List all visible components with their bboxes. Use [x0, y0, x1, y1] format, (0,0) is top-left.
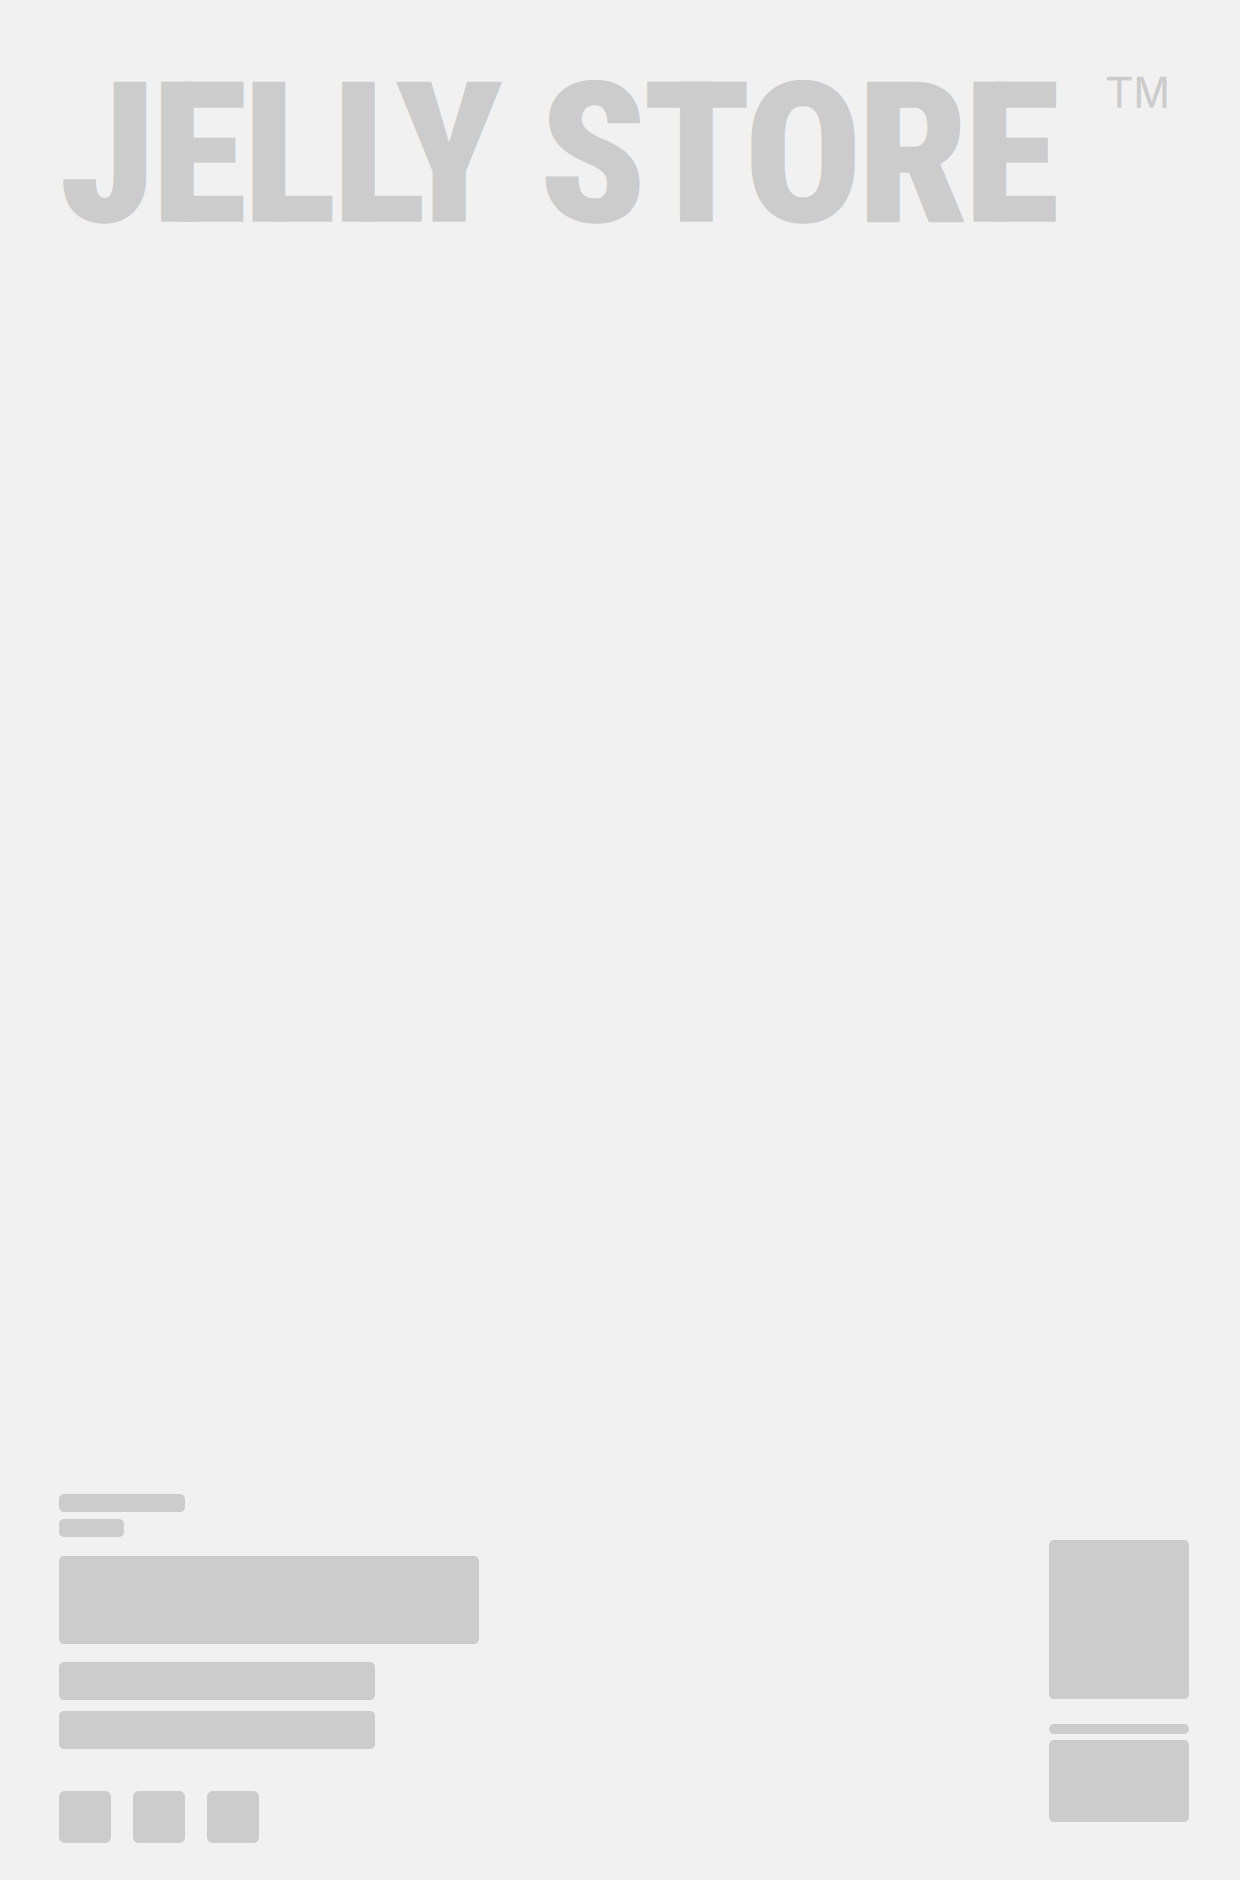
- button[interactable]: Option 1: [59, 1791, 111, 1843]
- button[interactable]: Option 3: [207, 1791, 259, 1843]
- staticText: JELLY STORE: [59, 40, 1060, 270]
- staticText: TM: [1106, 69, 1170, 117]
- button[interactable]: Option 2: [133, 1791, 185, 1843]
- button[interactable]: Jelly Store: [59, 40, 1170, 270]
